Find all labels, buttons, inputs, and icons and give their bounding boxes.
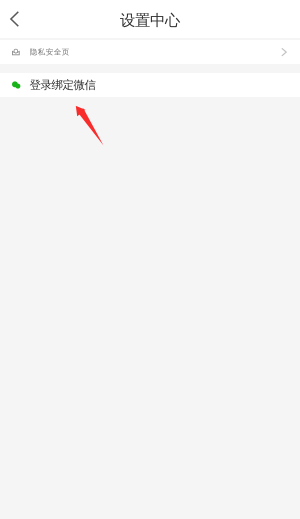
button[interactable]: 登录绑定微信	[0, 73, 300, 97]
button[interactable]: Back	[0, 0, 29, 38]
staticText: 设置中心	[120, 11, 180, 30]
button[interactable]: 隐私安全页	[0, 40, 300, 64]
staticText: 隐私安全页	[30, 47, 70, 57]
staticText: 登录绑定微信	[29, 78, 95, 92]
